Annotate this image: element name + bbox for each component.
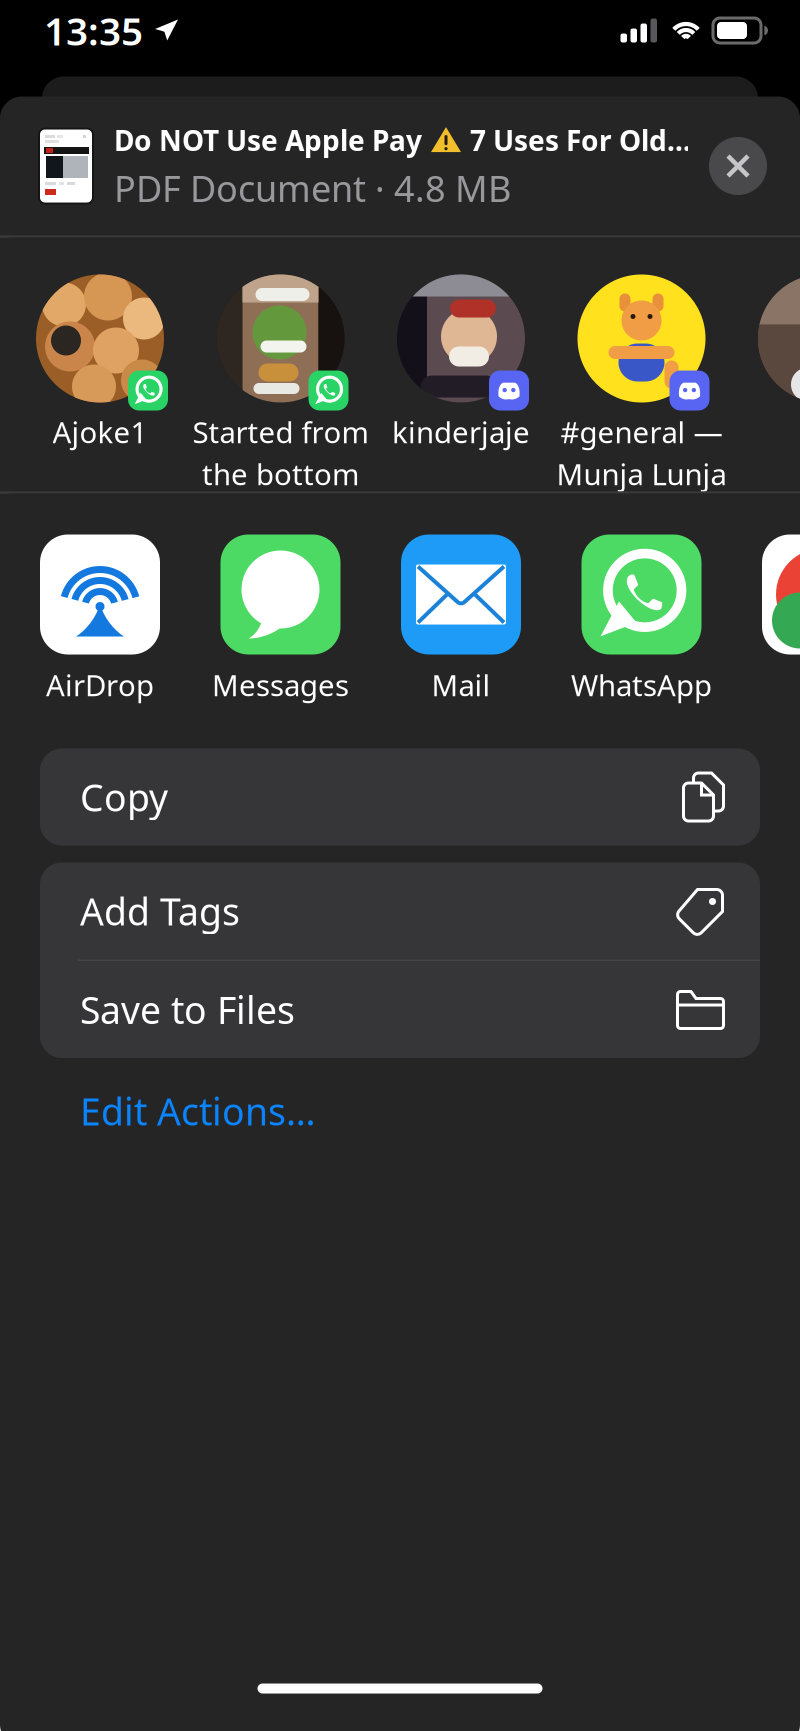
staticText: Edit Actions… (80, 1086, 316, 1136)
staticText: Save to Files (80, 985, 295, 1034)
staticText: Munja Lunja (556, 454, 726, 493)
button[interactable]: AirDrop (10, 493, 190, 725)
staticText: the bottom (202, 454, 359, 493)
staticText: WhatsApp (571, 665, 712, 704)
staticText: Mail (431, 665, 490, 704)
button[interactable]: E (732, 237, 800, 491)
button[interactable]: #general — (551, 237, 732, 491)
button[interactable]: Copy (40, 748, 760, 845)
button[interactable]: Mail (371, 493, 551, 725)
staticText: 7 Uses For Old… (470, 121, 691, 159)
button[interactable]: Add Tags (40, 862, 760, 959)
staticText: Started from (192, 412, 368, 451)
staticText: Messages (212, 665, 349, 704)
button[interactable]: WhatsApp (551, 493, 732, 725)
staticText: #general — (560, 412, 722, 451)
button[interactable]: Started from (190, 237, 371, 491)
button[interactable]: C (732, 493, 800, 725)
button[interactable]: Close (709, 137, 767, 195)
staticText: Add Tags (80, 886, 240, 936)
staticText: AirDrop (46, 665, 154, 704)
staticText: Ajoke1 (52, 412, 147, 451)
staticText: Do NOT Use Apple Pay (114, 121, 422, 159)
button[interactable]: Save to Files (40, 961, 760, 1058)
button[interactable]: Edit Actions… (40, 1080, 760, 1142)
button[interactable]: Ajoke1 (10, 237, 190, 491)
staticText: kinderjaje (392, 412, 530, 451)
staticText: Copy (80, 772, 168, 822)
button[interactable]: Messages (190, 493, 371, 725)
staticText: PDF Document · 4.8 MB (114, 164, 511, 212)
button[interactable]: kinderjaje (371, 237, 551, 491)
staticText: 13:35 (44, 5, 143, 56)
